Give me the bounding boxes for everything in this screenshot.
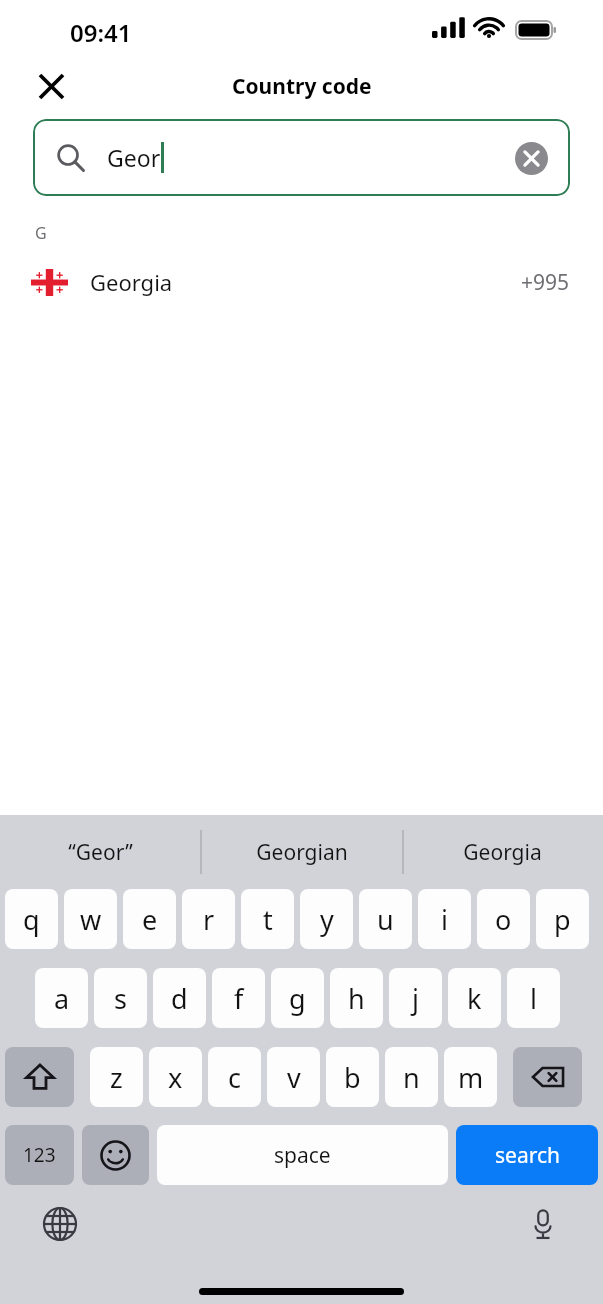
- staticText: o: [495, 901, 512, 938]
- staticText: space: [274, 1141, 331, 1170]
- button[interactable]: Emoji keyboard: [82, 1125, 149, 1185]
- staticText: s: [114, 980, 127, 1017]
- staticText: z: [110, 1059, 123, 1096]
- staticText: e: [142, 901, 158, 938]
- staticText: p: [554, 901, 571, 938]
- button[interactable]: l: [507, 968, 560, 1028]
- staticText: search: [495, 1141, 560, 1170]
- button[interactable]: v: [267, 1047, 320, 1107]
- button[interactable]: a: [35, 968, 88, 1028]
- staticText: h: [348, 980, 365, 1017]
- staticText: q: [23, 901, 40, 938]
- staticText: a: [54, 980, 70, 1017]
- button[interactable]: space: [157, 1125, 448, 1185]
- button[interactable]: e: [123, 889, 176, 949]
- button[interactable]: j: [389, 968, 442, 1028]
- staticText: Georgian: [256, 838, 348, 867]
- staticText: 123: [23, 1142, 56, 1168]
- button[interactable]: q: [5, 889, 58, 949]
- staticText: l: [530, 980, 537, 1017]
- button[interactable]: r: [182, 889, 235, 949]
- staticText: r: [203, 901, 215, 938]
- button[interactable]: Dictation: [516, 1197, 570, 1251]
- button[interactable]: m: [444, 1047, 497, 1107]
- button[interactable]: t: [241, 889, 294, 949]
- button[interactable]: Close: [24, 62, 78, 110]
- button[interactable]: Georgian: [201, 815, 402, 889]
- staticText: v: [287, 1059, 301, 1096]
- staticText: Country code: [232, 72, 372, 101]
- staticText: Georgia: [463, 838, 542, 867]
- button[interactable]: w: [64, 889, 117, 949]
- button[interactable]: k: [448, 968, 501, 1028]
- staticText: g: [289, 980, 306, 1017]
- staticText: +995: [521, 268, 570, 297]
- staticText: j: [412, 980, 419, 1017]
- button[interactable]: n: [385, 1047, 438, 1107]
- staticText: w: [80, 901, 102, 938]
- button[interactable]: f: [212, 968, 265, 1028]
- staticText: d: [171, 980, 188, 1017]
- button[interactable]: u: [359, 889, 412, 949]
- button[interactable]: Georgia: [0, 256, 603, 308]
- button[interactable]: d: [153, 968, 206, 1028]
- button[interactable]: s: [94, 968, 147, 1028]
- button[interactable]: Georgia: [402, 815, 603, 889]
- button[interactable]: 123: [5, 1125, 74, 1185]
- staticText: Geor: [107, 142, 161, 173]
- staticText: n: [403, 1059, 420, 1096]
- button[interactable]: Backspace: [513, 1047, 582, 1107]
- staticText: c: [228, 1059, 241, 1096]
- staticText: i: [441, 901, 448, 938]
- button[interactable]: g: [271, 968, 324, 1028]
- button[interactable]: b: [326, 1047, 379, 1107]
- button[interactable]: search: [456, 1125, 598, 1185]
- button[interactable]: i: [418, 889, 471, 949]
- staticText: k: [467, 980, 482, 1017]
- staticText: “Geor”: [68, 838, 133, 867]
- button[interactable]: Clear text: [509, 136, 553, 180]
- button[interactable]: Next keyboard: [33, 1197, 87, 1251]
- staticText: m: [458, 1059, 484, 1096]
- button[interactable]: Shift: [5, 1047, 74, 1107]
- staticText: f: [234, 980, 244, 1017]
- staticText: u: [377, 901, 394, 938]
- button[interactable]: z: [90, 1047, 143, 1107]
- button[interactable]: “Geor”: [0, 815, 201, 889]
- staticText: G: [35, 222, 47, 244]
- button[interactable]: Geor: [33, 119, 570, 196]
- staticText: Georgia: [90, 267, 173, 297]
- button[interactable]: c: [208, 1047, 261, 1107]
- staticText: y: [320, 901, 334, 938]
- staticText: b: [344, 1059, 361, 1096]
- staticText: 09:41: [70, 16, 132, 49]
- staticText: x: [168, 1059, 183, 1096]
- button[interactable]: x: [149, 1047, 202, 1107]
- button[interactable]: y: [300, 889, 353, 949]
- button[interactable]: p: [536, 889, 589, 949]
- staticText: t: [263, 901, 273, 938]
- button[interactable]: h: [330, 968, 383, 1028]
- button[interactable]: o: [477, 889, 530, 949]
